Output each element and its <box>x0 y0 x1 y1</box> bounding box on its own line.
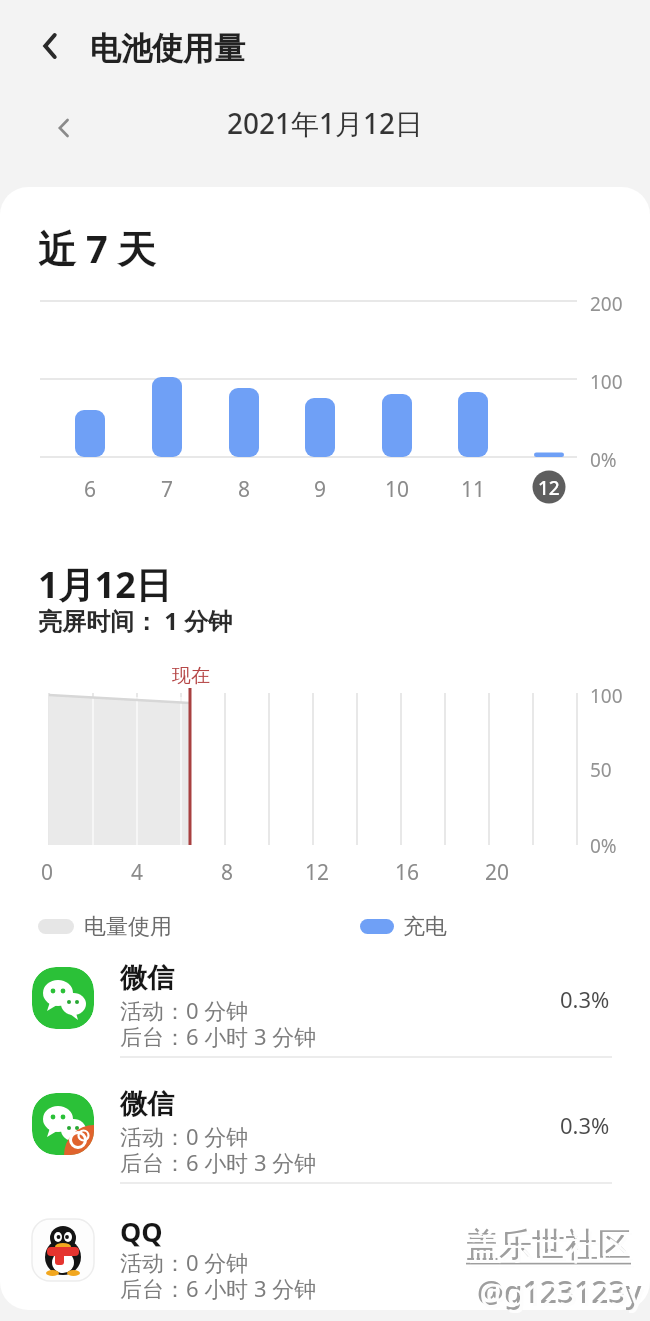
staticText: 9 <box>314 475 327 504</box>
staticText: 4 <box>131 858 144 887</box>
staticText: 亮屏时间： 1 分钟 <box>38 604 233 637</box>
staticText: 100 <box>590 683 623 709</box>
staticText: 活动：0 分钟 <box>120 995 249 1025</box>
staticText: QQ <box>120 1213 163 1250</box>
staticText: @g123123y <box>477 1271 642 1312</box>
staticText: 200 <box>590 291 623 317</box>
staticText: 充电 <box>403 913 447 941</box>
staticText: 12 <box>538 475 560 501</box>
staticText: 微信 <box>120 1087 174 1121</box>
staticText: 电量使用 <box>84 913 172 941</box>
staticText: 6 <box>84 475 97 504</box>
button[interactable]: 2021年1月12日 <box>227 104 424 142</box>
button[interactable] <box>0 955 650 1069</box>
staticText: 1月12日 <box>38 560 172 609</box>
staticText: 16 <box>395 858 420 887</box>
staticText: 电池使用量 <box>90 29 245 68</box>
staticText: @g123123y <box>480 1274 645 1315</box>
staticText: 12 <box>305 858 330 887</box>
staticText: 0% <box>590 447 617 473</box>
staticText: 8 <box>238 475 251 504</box>
staticText: 后台：6 小时 3 分钟 <box>120 1147 317 1177</box>
staticText: 0.3% <box>560 1110 610 1140</box>
staticText: 活动：0 分钟 <box>120 1247 249 1277</box>
button[interactable] <box>44 108 84 148</box>
staticText: 微信 <box>120 961 174 995</box>
staticText: 7 <box>161 475 174 504</box>
staticText: 活动：0 分钟 <box>120 1121 249 1151</box>
button[interactable] <box>0 1207 650 1321</box>
staticText: 20 <box>485 858 510 887</box>
button[interactable] <box>0 1081 650 1195</box>
staticText: 100 <box>590 369 623 395</box>
staticText: 盖乐世社区 <box>469 1227 634 1269</box>
staticText: 11 <box>461 475 486 504</box>
staticText: 0.3% <box>560 984 610 1014</box>
staticText: 0 <box>41 858 54 887</box>
staticText: 近 7 天 <box>38 222 156 274</box>
staticText: 8 <box>221 858 234 887</box>
staticText: 现在 <box>172 664 210 688</box>
staticText: 50 <box>590 757 612 783</box>
staticText: 10 <box>385 475 410 504</box>
staticText: 盖乐世社区 <box>466 1224 631 1266</box>
staticText: 0% <box>590 833 617 859</box>
staticText: 后台：6 小时 3 分钟 <box>120 1273 317 1303</box>
button[interactable] <box>28 24 72 68</box>
staticText: 后台：6 小时 3 分钟 <box>120 1021 317 1051</box>
